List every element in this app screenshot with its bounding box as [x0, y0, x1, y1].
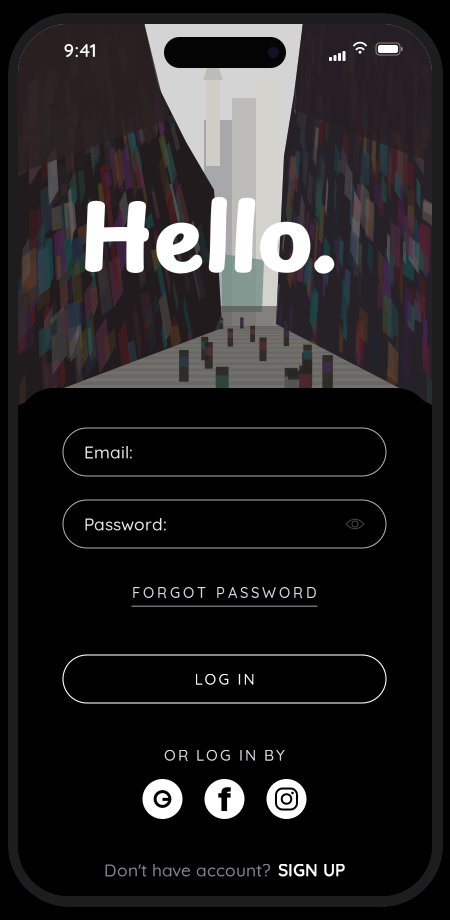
- button[interactable]: Sign in with Google: [142, 779, 182, 819]
- button[interactable]: L O G I N: [63, 655, 386, 703]
- staticText: Hello.: [80, 165, 337, 302]
- staticText: 9:41: [63, 38, 96, 62]
- staticText: O R L O G I N B Y: [164, 745, 285, 765]
- staticText: F O R G O T P A S S W O R D: [132, 583, 317, 602]
- button[interactable]: Sign in with Instagram: [266, 779, 306, 819]
- staticText: L O G I N: [194, 669, 254, 689]
- button[interactable]: Sign in with Facebook: [204, 779, 244, 819]
- button[interactable]: Email:: [63, 428, 386, 476]
- staticText: Email:: [84, 441, 133, 463]
- staticText: f: [218, 779, 231, 819]
- staticText: Password:: [84, 513, 167, 535]
- staticText: Don't have account?: [104, 859, 271, 881]
- button[interactable]: F O R G O T P A S S W O R D: [63, 582, 386, 608]
- button[interactable]: Password:: [63, 500, 386, 548]
- staticText: SIGN UP: [278, 859, 345, 881]
- button[interactable]: Don't have account?: [63, 858, 386, 882]
